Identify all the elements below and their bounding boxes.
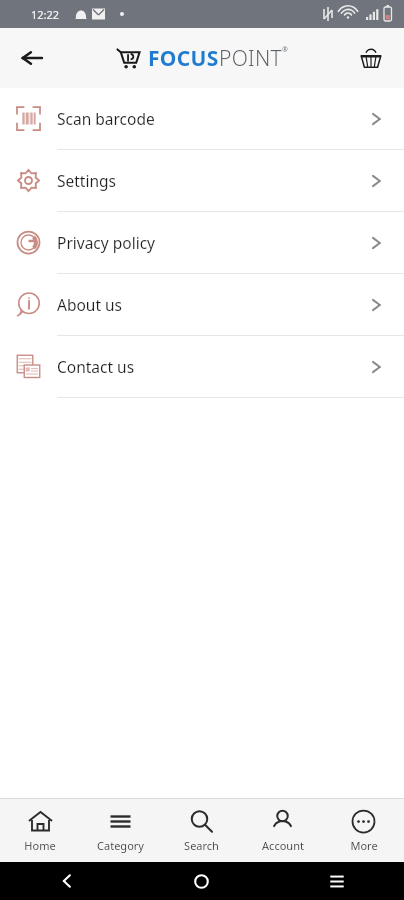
- button[interactable]: Category: [80, 799, 161, 862]
- button[interactable]: More: [323, 799, 404, 862]
- staticText: Scan barcode: [57, 108, 371, 129]
- staticText: Contact us: [57, 356, 371, 377]
- staticText: 12:22: [31, 7, 60, 22]
- button[interactable]: Home: [0, 799, 80, 862]
- button[interactable]: Privacy policy: [0, 212, 404, 274]
- staticText: Category: [97, 838, 144, 853]
- staticText: POINT: [219, 44, 282, 73]
- button[interactable]: Back: [8, 34, 56, 82]
- staticText: Privacy policy: [57, 232, 371, 253]
- button[interactable]: Settings: [0, 150, 404, 212]
- staticText: Account: [262, 838, 304, 853]
- button[interactable]: Scan barcode: [0, 88, 404, 150]
- staticText: Search: [184, 838, 219, 853]
- staticText: ®: [282, 45, 288, 55]
- button[interactable]: Cart: [348, 35, 394, 81]
- button[interactable]: Search: [161, 799, 242, 862]
- staticText: More: [350, 838, 378, 853]
- staticText: Settings: [57, 170, 371, 191]
- button[interactable]: Contact us: [0, 336, 404, 398]
- staticText: FOCUS: [148, 44, 219, 73]
- staticText: Home: [24, 838, 56, 853]
- staticText: About us: [57, 294, 371, 315]
- button[interactable]: Account: [242, 799, 323, 862]
- button[interactable]: About us: [0, 274, 404, 336]
